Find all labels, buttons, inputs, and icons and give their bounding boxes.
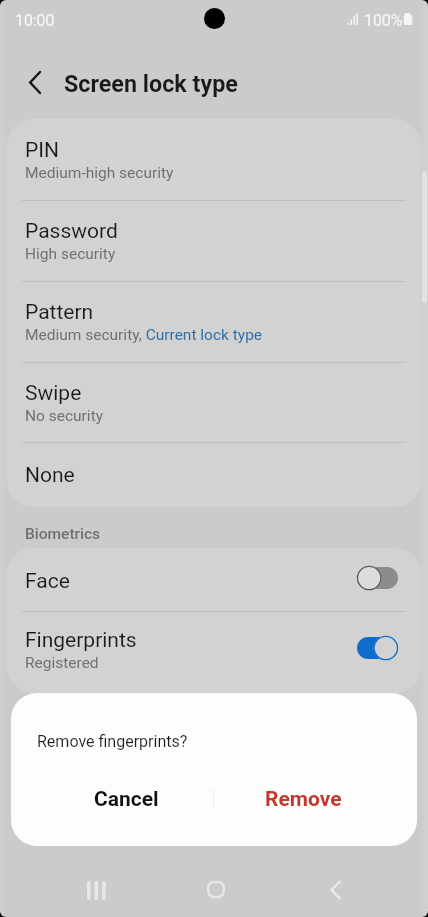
staticText: Fingerprints <box>25 628 137 653</box>
button[interactable]: Swipe <box>7 362 421 443</box>
button[interactable]: None <box>7 443 421 507</box>
staticText: PIN <box>25 138 59 163</box>
button[interactable]: Face <box>7 548 421 611</box>
staticText: Medium-high security <box>25 164 174 182</box>
staticText: No security <box>25 407 104 425</box>
button[interactable]: Password <box>7 200 421 281</box>
staticText: Biometrics <box>25 525 101 543</box>
button[interactable]: Fingerprints <box>7 611 421 693</box>
button[interactable]: Recent apps <box>72 866 122 914</box>
staticText: Face <box>25 569 70 594</box>
staticText: Remove <box>265 787 342 812</box>
staticText: Registered <box>25 654 99 672</box>
button[interactable]: Enabled <box>349 634 399 662</box>
staticText: Cancel <box>94 787 159 812</box>
button[interactable]: Back <box>313 866 363 914</box>
staticText: Swipe <box>25 381 82 406</box>
button[interactable]: PIN <box>7 119 421 200</box>
staticText: None <box>25 463 75 488</box>
staticText: Password <box>25 219 118 244</box>
button[interactable]: Pattern <box>7 281 421 362</box>
staticText: Medium security, Current lock type <box>25 326 263 344</box>
staticText: Screen lock type <box>64 70 238 97</box>
button[interactable]: Home <box>191 866 241 914</box>
staticText: Pattern <box>25 300 94 325</box>
button[interactable]: Remove <box>220 771 387 827</box>
button[interactable]: Navigate up <box>11 59 59 107</box>
button[interactable]: Cancel <box>43 771 210 827</box>
staticText: 100% <box>364 11 403 30</box>
button[interactable]: Disabled <box>349 564 399 592</box>
staticText: Remove fingerprints? <box>37 732 188 751</box>
staticText: 10:00 <box>15 11 55 30</box>
staticText: High security <box>25 245 116 263</box>
